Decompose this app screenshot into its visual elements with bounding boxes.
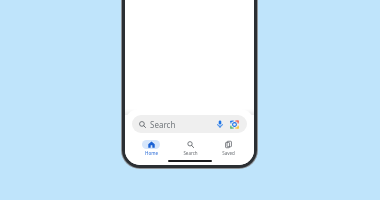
button[interactable]: Google Lens xyxy=(228,118,240,130)
button[interactable]: Saved xyxy=(210,138,246,157)
staticText: Saved xyxy=(222,150,235,156)
staticText: Search xyxy=(150,119,176,130)
button[interactable]: Search xyxy=(172,138,208,157)
button[interactable]: Voice search xyxy=(214,118,226,130)
staticText: Home xyxy=(145,150,158,156)
button[interactable]: Search xyxy=(132,115,247,133)
button[interactable]: Home xyxy=(133,138,169,157)
staticText: Search xyxy=(183,150,198,156)
